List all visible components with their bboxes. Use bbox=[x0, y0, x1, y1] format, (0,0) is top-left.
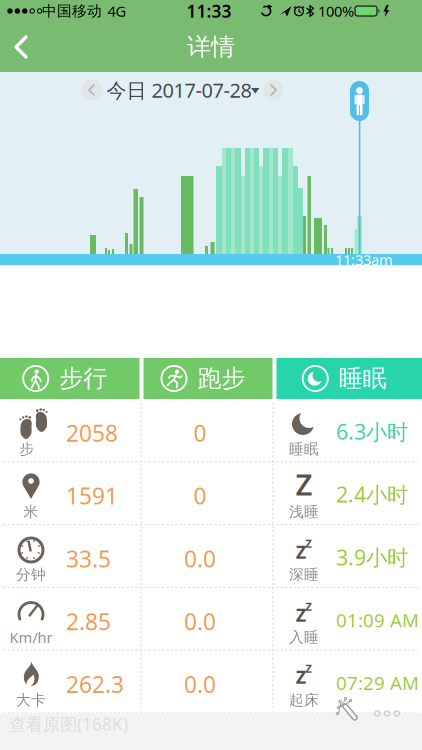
staticText: 大卡 bbox=[16, 691, 46, 709]
button[interactable]: 跑步 bbox=[143, 358, 272, 399]
staticText: 07:29 AM bbox=[336, 670, 419, 695]
staticText: 睡眠 bbox=[289, 440, 319, 458]
staticText: z bbox=[305, 532, 312, 552]
staticText: 100% bbox=[318, 1, 354, 21]
staticText: 0.0 bbox=[184, 606, 216, 636]
staticText: 深睡 bbox=[289, 566, 319, 584]
staticText: z bbox=[295, 598, 306, 628]
button[interactable]: 今日 2017-07-28 bbox=[104, 79, 264, 101]
staticText: 6.3小时 bbox=[336, 417, 408, 446]
button[interactable]: 查看原图(168K) bbox=[9, 712, 159, 736]
staticText: z bbox=[295, 660, 306, 690]
button[interactable]: Previous day bbox=[81, 79, 102, 100]
staticText: 入睡 bbox=[289, 628, 319, 646]
staticText: 11:33am bbox=[335, 250, 393, 269]
staticText: 1591 bbox=[66, 481, 118, 511]
staticText: 睡眠 bbox=[339, 364, 387, 393]
staticText: Z bbox=[295, 464, 312, 503]
button[interactable]: Next day bbox=[262, 79, 283, 100]
staticText: 中国移动 bbox=[42, 2, 102, 20]
staticText: 起床 bbox=[289, 691, 319, 709]
staticText: 0 bbox=[193, 418, 206, 448]
button[interactable]: 步行 bbox=[0, 358, 139, 399]
staticText: 跑步 bbox=[197, 364, 245, 393]
button[interactable]: 睡眠 bbox=[276, 358, 422, 399]
staticText: 2.85 bbox=[66, 606, 111, 636]
staticText: 米 bbox=[23, 503, 38, 521]
staticText: z bbox=[295, 535, 306, 565]
staticText: Km/hr bbox=[9, 628, 52, 647]
staticText: z bbox=[305, 595, 312, 615]
staticText: 查看原图(168K) bbox=[9, 712, 128, 735]
staticText: 今日 2017-07-28 bbox=[106, 77, 251, 103]
staticText: 0 bbox=[193, 481, 206, 511]
staticText: 浅睡 bbox=[289, 503, 319, 521]
staticText: 01:09 AM bbox=[336, 607, 419, 632]
staticText: 262.3 bbox=[66, 669, 124, 699]
staticText: 2.4小时 bbox=[336, 480, 408, 508]
staticText: 2058 bbox=[66, 418, 118, 448]
button[interactable]: Edit bbox=[334, 697, 360, 723]
staticText: 步行 bbox=[59, 364, 107, 393]
button[interactable]: Back bbox=[0, 28, 44, 66]
button[interactable]: More bbox=[373, 706, 401, 720]
staticText: 分钟 bbox=[16, 566, 46, 584]
staticText: 33.5 bbox=[66, 543, 111, 574]
staticText: 详情 bbox=[187, 32, 235, 62]
staticText: z bbox=[305, 657, 312, 677]
staticText: 11:33 bbox=[186, 0, 231, 22]
staticText: 0.0 bbox=[184, 543, 216, 574]
staticText: 步 bbox=[19, 440, 34, 458]
staticText: 4G bbox=[107, 1, 126, 21]
staticText: 0.0 bbox=[184, 669, 216, 699]
staticText: 3.9小时 bbox=[336, 543, 408, 571]
